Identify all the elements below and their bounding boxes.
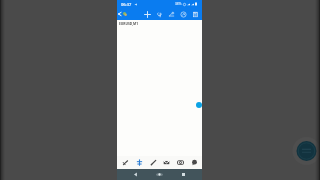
button[interactable]: Back xyxy=(130,169,141,180)
button[interactable]: Recents xyxy=(178,169,189,180)
button[interactable]: Chart handle xyxy=(196,102,202,108)
button[interactable]: Camera xyxy=(174,156,186,169)
button[interactable]: Add xyxy=(141,8,153,20)
button[interactable]: Save xyxy=(189,8,201,20)
button[interactable]: Objects xyxy=(165,8,177,20)
button[interactable]: Chat xyxy=(188,156,200,169)
button[interactable]: Back xyxy=(117,8,122,20)
button[interactable]: Cursor xyxy=(119,156,131,169)
button[interactable]: Draw xyxy=(147,156,159,169)
button[interactable]: Home xyxy=(154,169,165,180)
staticText: 06:37 xyxy=(121,2,132,7)
button[interactable]: Mail xyxy=(160,156,172,169)
button[interactable]: Crosshair tool xyxy=(133,156,145,169)
staticText: 38% xyxy=(175,2,182,6)
staticText: EURUSD,M1 xyxy=(119,21,139,25)
button[interactable]: Settings xyxy=(177,8,189,20)
button[interactable]: Crosshair xyxy=(153,8,165,20)
